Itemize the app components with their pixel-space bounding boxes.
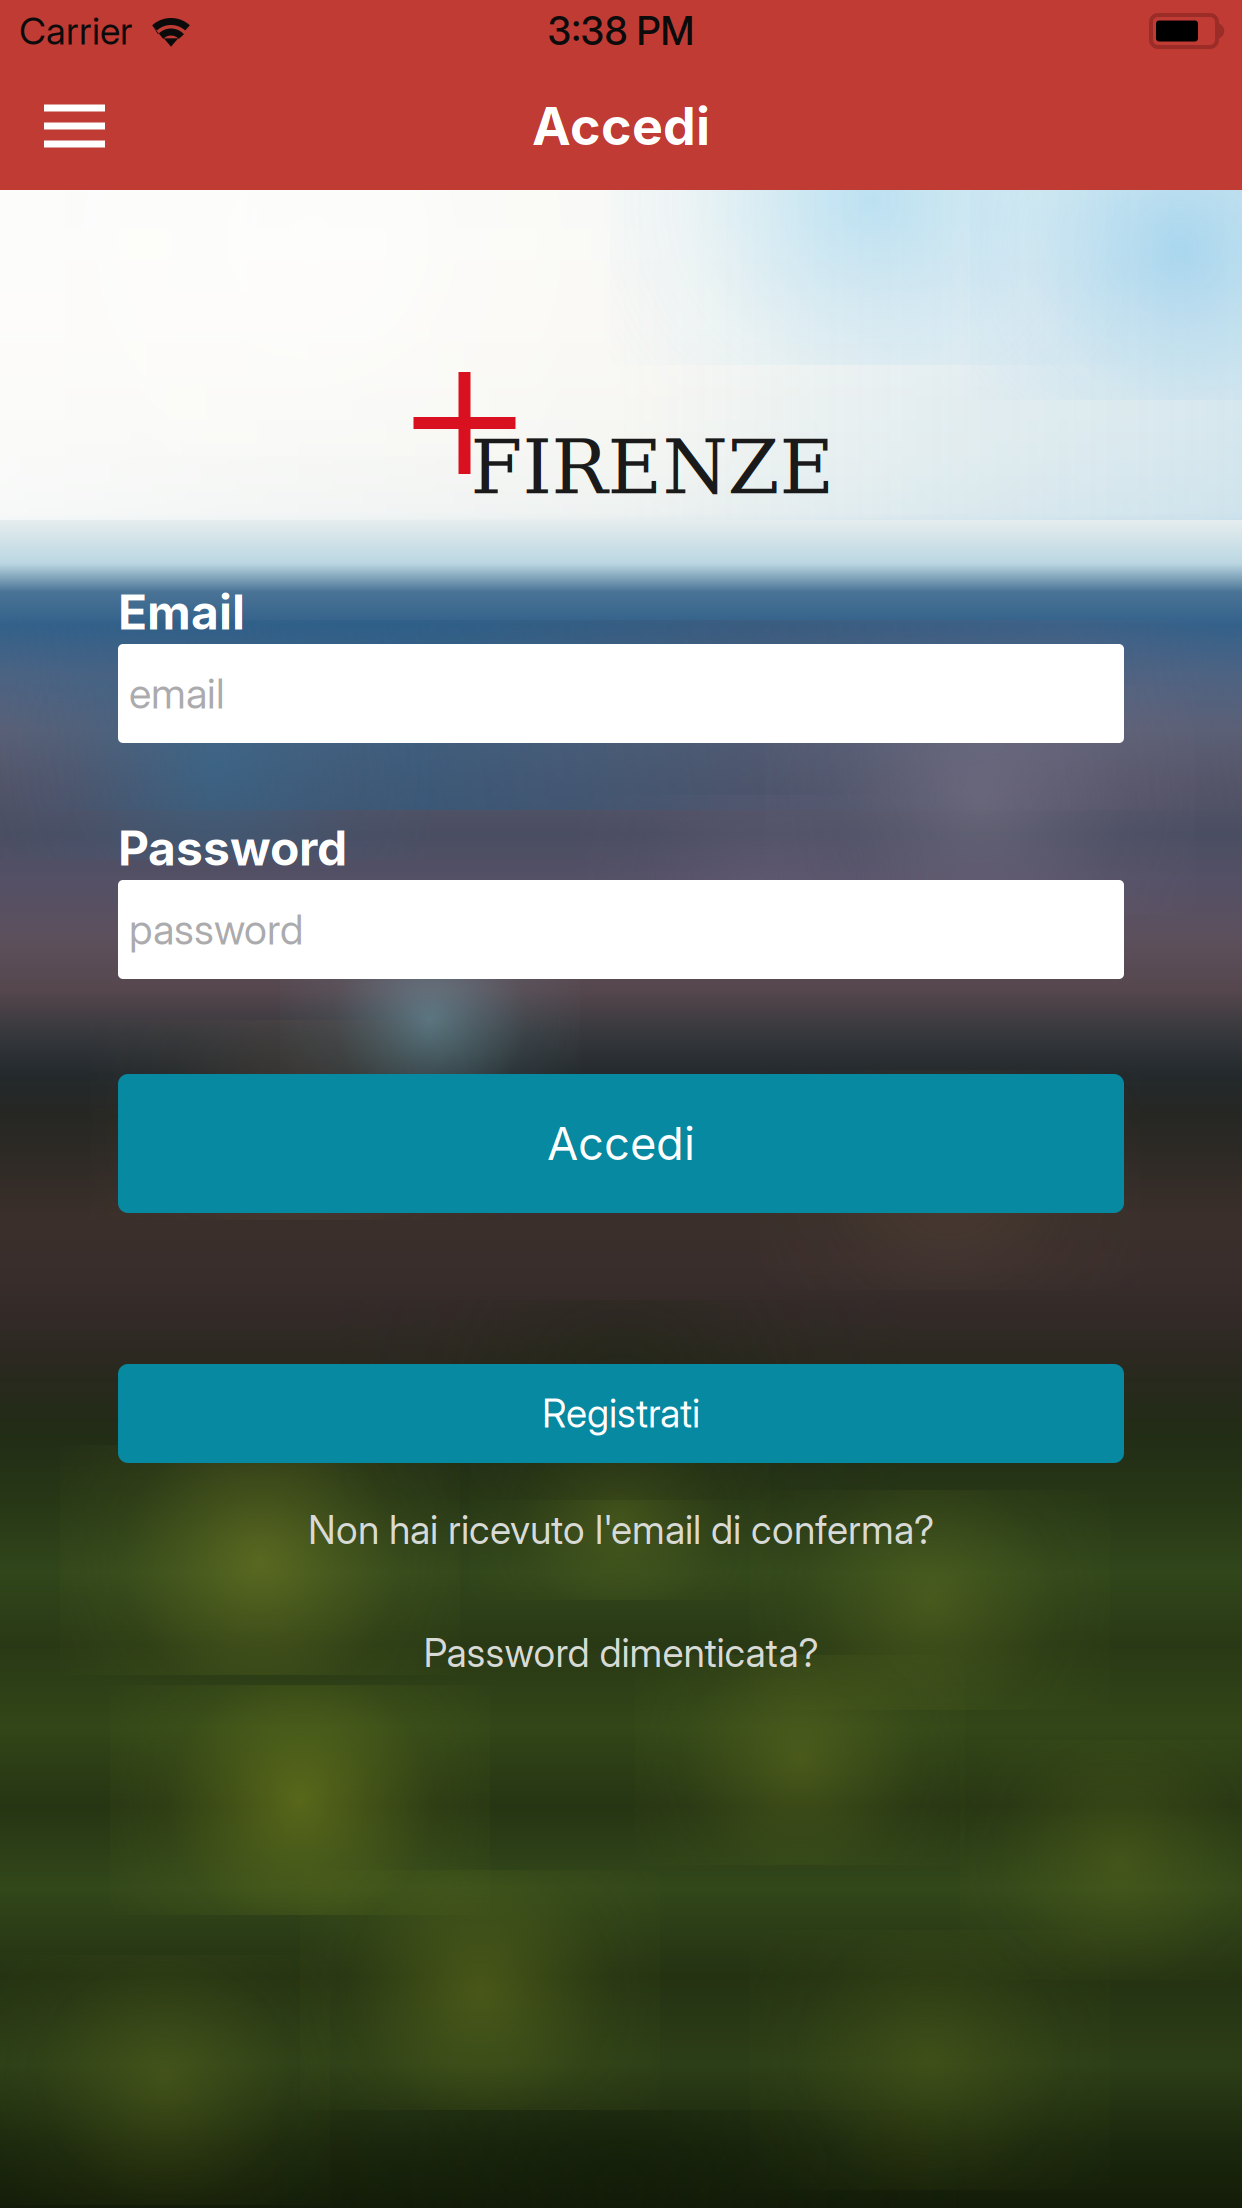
button[interactable]: Registrati bbox=[118, 1364, 1124, 1463]
button[interactable]: Non hai ricevuto l'email di conferma? bbox=[118, 1502, 1124, 1558]
staticText: email bbox=[129, 668, 225, 718]
staticText: Email bbox=[118, 583, 245, 641]
staticText: password bbox=[129, 904, 303, 954]
staticText: FIRENZE bbox=[470, 424, 834, 511]
staticText: Accedi bbox=[532, 94, 710, 157]
button[interactable]: email bbox=[118, 644, 1124, 743]
button[interactable]: password bbox=[118, 880, 1124, 979]
button[interactable]: Menu bbox=[22, 76, 127, 176]
button[interactable]: Accedi bbox=[118, 1074, 1124, 1213]
button[interactable]: Password dimenticata? bbox=[118, 1625, 1124, 1681]
staticText: Registrati bbox=[542, 1390, 700, 1437]
staticText: Non hai ricevuto l'email di conferma? bbox=[308, 1507, 934, 1553]
staticText: Password bbox=[118, 819, 347, 877]
staticText: Carrier bbox=[19, 8, 132, 54]
staticText: Accedi bbox=[547, 1116, 695, 1171]
staticText: 3:38 PM bbox=[547, 8, 694, 54]
staticText: Password dimenticata? bbox=[423, 1630, 818, 1676]
